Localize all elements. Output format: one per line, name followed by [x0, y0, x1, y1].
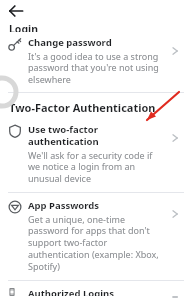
staticText: Use two-factor authentication: [28, 123, 166, 148]
staticText: Authorized Logins: [28, 287, 114, 296]
button[interactable]: Back: [5, 0, 27, 22]
staticText: Login: [9, 22, 39, 32]
button[interactable]: Key: [0, 32, 184, 90]
other: Key: [8, 37, 22, 51]
button[interactable]: App passwords: [0, 195, 184, 277]
other: Device: [8, 288, 22, 296]
staticText: App Passwords: [28, 199, 100, 212]
button[interactable]: Device: [0, 283, 184, 300]
staticText: We'll ask for a security code if we noti…: [28, 149, 166, 185]
other: App passwords: [8, 200, 22, 214]
staticText: Get a unique, one-time password for apps…: [28, 213, 166, 273]
staticText: Two-Factor Authentication: [9, 100, 184, 115]
staticText: It's a good idea to use a strong passwor…: [28, 50, 166, 86]
staticText: Change password: [28, 36, 112, 49]
other: Shield: [8, 124, 22, 138]
button[interactable]: Shield: [0, 119, 184, 189]
